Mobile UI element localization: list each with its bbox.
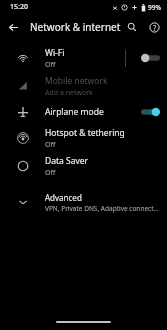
button[interactable]: Wi‑Fi: [0, 44, 167, 72]
button[interactable]: Wi‑Fi toggle: [139, 50, 161, 66]
button[interactable]: Help: [144, 17, 164, 37]
button[interactable]: Back: [3, 17, 23, 37]
button[interactable]: Mobile network: [0, 72, 167, 100]
staticText: Network & internet: [30, 20, 121, 34]
button[interactable]: Airplane mode: [0, 100, 167, 124]
staticText: Add a network: [45, 88, 93, 98]
staticText: Hotspot & tethering: [45, 127, 125, 139]
staticText: Advanced: [45, 192, 82, 203]
button[interactable]: Airplane mode toggle: [139, 104, 161, 120]
button[interactable]: Search: [122, 17, 142, 37]
button[interactable]: Advanced: [0, 188, 167, 216]
staticText: Off: [45, 168, 56, 178]
button[interactable]: Data Saver: [0, 152, 167, 180]
button[interactable]: Hotspot & tethering: [0, 124, 167, 152]
staticText: Off: [45, 140, 56, 150]
staticText: Airplane mode: [45, 106, 104, 118]
staticText: Mobile network: [45, 75, 108, 87]
staticText: Off: [45, 60, 56, 70]
staticText: 99%: [148, 3, 161, 12]
staticText: Data Saver: [45, 155, 89, 167]
staticText: VPN, Private DNS, Adaptive connectivity: [45, 204, 159, 213]
staticText: Wi‑Fi: [45, 47, 65, 59]
staticText: 15:20: [10, 2, 28, 12]
